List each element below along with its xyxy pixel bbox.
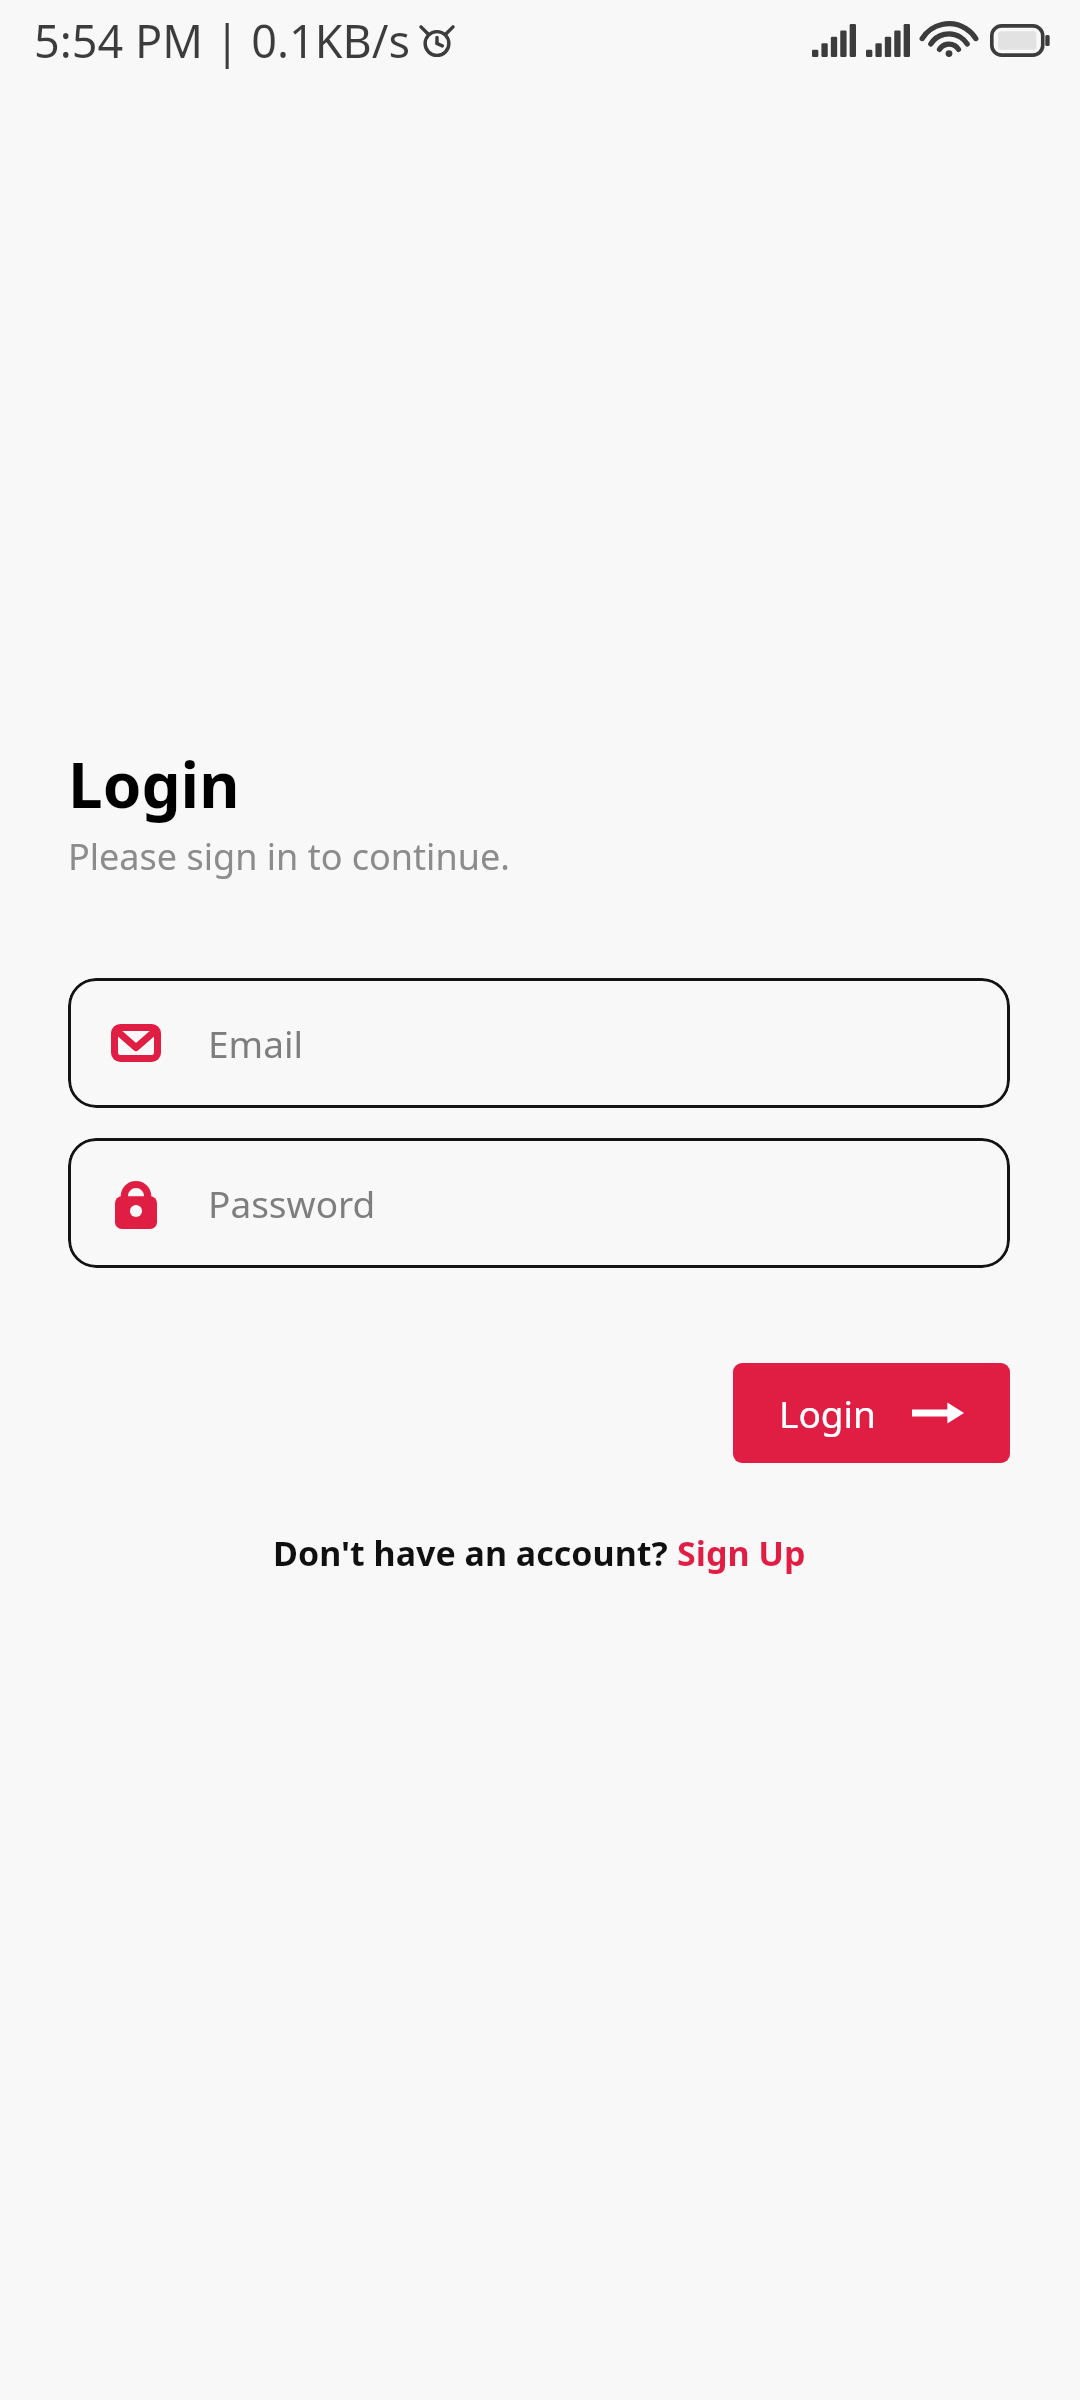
staticText: Email <box>208 1018 304 1068</box>
staticText: Don't have an account? <box>273 1530 677 1576</box>
staticText: Sign Up <box>677 1530 806 1576</box>
button[interactable]: Email <box>68 978 1010 1108</box>
staticText: Password <box>208 1178 376 1228</box>
other: Password <box>110 1177 162 1229</box>
staticText: Login <box>68 742 240 826</box>
button[interactable]: Password <box>68 1138 1010 1268</box>
other: Email <box>110 1017 162 1069</box>
staticText: Please sign in to continue. <box>68 832 510 881</box>
button[interactable]: Sign Up <box>677 1530 806 1576</box>
staticText: Login <box>779 1388 876 1438</box>
button[interactable]: Login <box>733 1363 1010 1463</box>
staticText: 5:54 PM | 0.1KB/s <box>34 10 411 71</box>
